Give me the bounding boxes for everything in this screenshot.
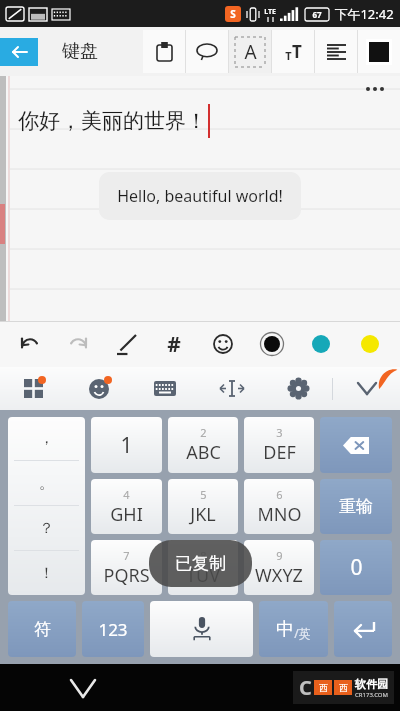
button[interactable]: 0: [320, 540, 392, 595]
staticText: A: [244, 39, 257, 65]
button[interactable]: 6: [244, 479, 314, 534]
button[interactable]: 5: [168, 479, 238, 534]
button[interactable]: Hide keyboard: [333, 367, 400, 410]
button[interactable]: Apps: [0, 367, 66, 410]
button[interactable]: Back: [0, 38, 38, 66]
button[interactable]: Align: [315, 30, 357, 73]
staticText: 1: [120, 431, 133, 460]
staticText: 你好，美丽的世界！: [18, 108, 207, 134]
button[interactable]: Pen: [102, 321, 150, 367]
staticText: CR173.COM: [355, 691, 388, 699]
staticText: #: [167, 330, 181, 359]
button[interactable]: More options: [362, 83, 388, 95]
button[interactable]: 3: [244, 417, 314, 473]
staticText: 重输: [339, 496, 373, 517]
staticText: 6: [276, 487, 283, 502]
staticText: 8: [200, 548, 207, 563]
button[interactable]: 2: [168, 417, 238, 473]
staticText: 已复制: [175, 553, 226, 574]
staticText: 。: [39, 474, 54, 493]
button[interactable]: Settings: [265, 367, 332, 410]
staticText: GHI: [110, 502, 143, 527]
button[interactable]: Enter: [334, 601, 392, 657]
button[interactable]: Backspace: [320, 417, 392, 473]
button[interactable]: Font: [229, 30, 271, 73]
staticText: 9: [276, 548, 283, 563]
button[interactable]: Yellow color: [345, 321, 394, 367]
staticText: T: [292, 40, 302, 63]
staticText: 2: [200, 425, 207, 440]
button[interactable]: Keyboard: [132, 367, 198, 410]
button[interactable]: Text size: [272, 30, 314, 73]
staticText: 西: [319, 682, 328, 693]
button[interactable]: 8: [168, 540, 238, 595]
button[interactable]: Color: [358, 30, 400, 73]
button[interactable]: Teal color: [296, 321, 345, 367]
staticText: S: [230, 7, 236, 21]
button[interactable]: 符: [8, 601, 76, 657]
button[interactable]: 1: [91, 417, 162, 473]
staticText: Hello, beautiful world!: [117, 185, 283, 207]
staticText: JKL: [190, 502, 216, 527]
button[interactable]: 9: [244, 540, 314, 595]
button[interactable]: 4: [91, 479, 162, 534]
button[interactable]: Clipboard: [143, 30, 185, 73]
button[interactable]: Hello, beautiful world!: [99, 172, 301, 220]
staticText: WXYZ: [255, 563, 303, 588]
staticText: 3: [276, 425, 283, 440]
staticText: /英: [294, 625, 311, 641]
staticText: 7: [123, 548, 130, 563]
button[interactable]: Emoji: [66, 367, 132, 410]
staticText: 4: [123, 487, 130, 502]
staticText: ABC: [186, 440, 221, 465]
staticText: 下午12:42: [334, 5, 394, 23]
staticText: ！: [39, 564, 54, 583]
button[interactable]: Comment: [186, 30, 228, 73]
button[interactable]: 123: [82, 601, 144, 657]
staticText: 西: [339, 682, 348, 693]
staticText: TUV: [186, 563, 220, 588]
staticText: 中: [276, 618, 294, 641]
staticText: LTE: [264, 7, 276, 17]
staticText: ？: [39, 519, 54, 538]
button[interactable]: Hide keyboard: [62, 667, 104, 709]
button[interactable]: Redo: [54, 321, 102, 367]
staticText: 0: [350, 553, 363, 582]
staticText: 123: [98, 618, 128, 641]
staticText: DEF: [263, 440, 296, 465]
staticText: T: [285, 48, 292, 63]
staticText: ，: [39, 429, 54, 448]
button[interactable]: ，: [8, 417, 85, 595]
button[interactable]: Hashtag: [150, 321, 198, 367]
button[interactable]: Black color: [247, 321, 296, 367]
button[interactable]: 中: [259, 601, 328, 657]
staticText: MNO: [257, 502, 302, 527]
staticText: C: [299, 674, 312, 701]
staticText: 5: [200, 487, 207, 502]
button[interactable]: Undo: [6, 321, 54, 367]
button[interactable]: Voice input / Space: [150, 601, 253, 657]
staticText: 67: [312, 9, 322, 20]
button[interactable]: 7: [91, 540, 162, 595]
staticText: PQRS: [103, 563, 150, 588]
button[interactable]: Move cursor: [198, 367, 265, 410]
button[interactable]: Re-enter: [320, 479, 392, 534]
staticText: 符: [34, 619, 51, 640]
staticText: 软件园: [355, 677, 388, 691]
button[interactable]: Emoji: [198, 321, 247, 367]
staticText: 键盘: [62, 40, 98, 63]
